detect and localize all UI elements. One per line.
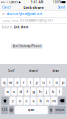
- button[interactable]: g: [31, 87, 36, 96]
- button[interactable]: n: [44, 97, 50, 105]
- staticText: d: [19, 89, 21, 94]
- button[interactable]: f: [24, 87, 30, 96]
- staticText: Sent from my iPhone: [12, 44, 41, 48]
- staticText: “Link”: [8, 69, 15, 73]
- button[interactable]: k: [50, 87, 56, 96]
- staticText: Link share: [14, 25, 29, 29]
- staticText: Link share: [23, 5, 43, 10]
- staticText: k: [52, 89, 54, 94]
- staticText: i: [49, 79, 50, 85]
- staticText: v: [32, 98, 34, 103]
- staticText: Send: [58, 6, 65, 9]
- button[interactable]: space: [15, 106, 48, 114]
- staticText: t: [30, 79, 31, 85]
- button[interactable]: p: [60, 78, 66, 86]
- button[interactable]: Shift: [1, 97, 9, 105]
- staticText: 9:41 AM: [31, 0, 43, 4]
- staticText: Cc/Bcc, From:: [2, 19, 19, 22]
- button[interactable]: s: [11, 87, 17, 96]
- button[interactable]: Cancel: [1, 4, 12, 10]
- staticText: s: [13, 89, 15, 94]
- button[interactable]: To:: [0, 11, 67, 17]
- staticText: feedback@shinyfrog.net: [20, 19, 53, 22]
- button[interactable]: Send: [57, 4, 66, 10]
- staticText: o: [55, 79, 57, 85]
- button[interactable]: d: [18, 87, 23, 96]
- button[interactable]: c: [23, 97, 30, 105]
- staticText: y: [36, 79, 38, 85]
- staticText: b: [39, 98, 41, 103]
- staticText: p: [62, 79, 64, 85]
- staticText: c: [26, 98, 28, 103]
- staticText: f: [26, 89, 27, 94]
- button[interactable]: i: [47, 78, 53, 86]
- button[interactable]: h: [37, 87, 43, 96]
- button[interactable]: Next keyboard: [9, 106, 14, 114]
- staticText: 100%: [53, 0, 61, 4]
- staticText: r: [23, 79, 25, 85]
- button[interactable]: a: [5, 87, 10, 96]
- staticText: Subject:: [2, 25, 13, 29]
- staticText: a: [7, 89, 9, 94]
- button[interactable]: Dictation: [49, 106, 54, 114]
- button[interactable]: u: [40, 78, 46, 86]
- button[interactable]: v: [30, 97, 37, 105]
- staticText: To:: [2, 12, 6, 16]
- staticText: space: [28, 108, 35, 112]
- button[interactable]: z: [10, 97, 16, 105]
- staticText: e: [16, 79, 18, 85]
- staticText: w: [9, 79, 12, 85]
- button[interactable]: l: [57, 87, 62, 96]
- staticText: g: [32, 89, 34, 94]
- button[interactable]: Subject:: [0, 24, 67, 30]
- button[interactable]: x: [17, 97, 23, 105]
- staticText: shared: [29, 69, 38, 73]
- staticText: x: [19, 98, 21, 103]
- button[interactable]: y: [34, 78, 40, 86]
- button[interactable]: m: [51, 97, 57, 105]
- button[interactable]: j: [44, 87, 49, 96]
- staticText: absolutelybear@gmail.com: [7, 12, 42, 16]
- staticText: u: [42, 79, 44, 85]
- staticText: share: [52, 69, 59, 73]
- button[interactable]: b: [37, 97, 43, 105]
- staticText: j: [46, 89, 47, 94]
- staticText: 123: [2, 108, 8, 112]
- staticText: n: [46, 98, 48, 103]
- staticText: Carrier: [9, 0, 18, 4]
- button[interactable]: o: [54, 78, 59, 86]
- button[interactable]: e: [14, 78, 20, 86]
- button[interactable]: return: [54, 106, 66, 114]
- button[interactable]: r: [21, 78, 26, 86]
- button[interactable]: Cc/Bcc, From:: [0, 17, 67, 24]
- button[interactable]: Delete: [58, 97, 66, 105]
- button[interactable]: t: [27, 78, 33, 86]
- staticText: Cancel: [2, 6, 11, 9]
- staticText: return: [56, 108, 65, 112]
- button[interactable]: w: [8, 78, 13, 86]
- button[interactable]: q: [1, 78, 7, 86]
- button[interactable]: 123: [1, 106, 8, 114]
- staticText: h: [39, 89, 41, 94]
- staticText: z: [12, 98, 14, 103]
- staticText: q: [3, 79, 5, 85]
- staticText: m: [52, 98, 56, 103]
- staticText: l: [59, 89, 60, 94]
